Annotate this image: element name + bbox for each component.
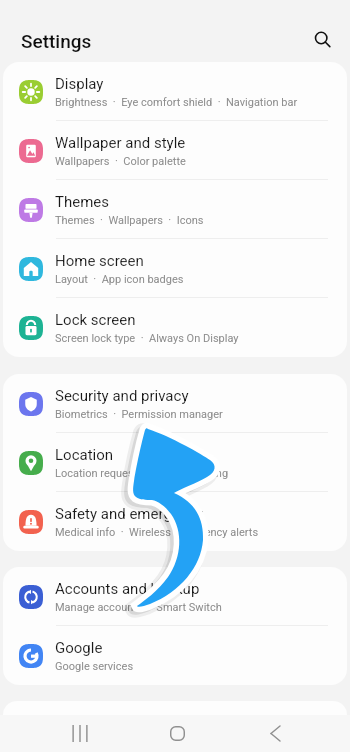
button[interactable]: Location (3, 433, 347, 492)
staticText: Security and privacy (55, 387, 189, 405)
staticText: Themes · Wallpapers · Icons (55, 214, 204, 227)
button[interactable]: Home (153, 715, 201, 752)
button[interactable]: Home screen (3, 239, 347, 298)
button[interactable]: Safety and emergency (3, 492, 347, 551)
button[interactable]: Recent apps (56, 715, 104, 752)
button[interactable]: Back (251, 715, 299, 752)
button[interactable]: Accounts and backup (3, 567, 347, 626)
button[interactable]: Themes (3, 180, 347, 239)
staticText: Accounts and backup (55, 580, 200, 598)
staticText: Biometrics · Permission manager (55, 408, 223, 421)
staticText: Location requests · Wi-Fi scanning (55, 467, 229, 480)
button[interactable]: Lock screen (3, 298, 347, 357)
staticText: Screen lock type · Always On Display (55, 332, 239, 345)
staticText: Location (55, 446, 114, 464)
button[interactable]: Display (3, 62, 347, 121)
staticText: Google services (55, 660, 134, 673)
button[interactable]: Security and privacy (3, 374, 347, 433)
staticText: Display (55, 75, 104, 93)
button[interactable]: Google (3, 626, 347, 685)
staticText: Medical info · Wireless emergency alerts (55, 526, 259, 539)
staticText: Wallpaper and style (55, 134, 186, 152)
staticText: Layout · App icon badges (55, 273, 184, 286)
staticText: Settings (21, 30, 92, 52)
staticText: Brightness · Eye comfort shield · Naviga… (55, 96, 298, 109)
staticText: Home screen (55, 252, 144, 270)
staticText: Google (55, 639, 103, 657)
staticText: Lock screen (55, 311, 136, 329)
staticText: Manage accounts · Smart Switch (55, 601, 222, 614)
button[interactable]: Wallpaper and style (3, 121, 347, 180)
button[interactable]: Search (304, 21, 342, 59)
staticText: Safety and emergency (55, 505, 204, 523)
staticText: Themes (55, 193, 110, 211)
staticText: Wallpapers · Color palette (55, 155, 186, 168)
